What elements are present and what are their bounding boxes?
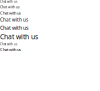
staticText: Chat with us xyxy=(0,10,21,16)
staticText: Chat with us xyxy=(0,47,21,52)
staticText: Chat with us xyxy=(0,32,38,41)
staticText: Chat with us xyxy=(0,42,17,46)
staticText: Chat with us xyxy=(0,24,29,31)
staticText: Chat with us xyxy=(0,0,17,4)
staticText: Chat with us xyxy=(0,5,20,9)
staticText: Chat with us xyxy=(0,17,28,23)
